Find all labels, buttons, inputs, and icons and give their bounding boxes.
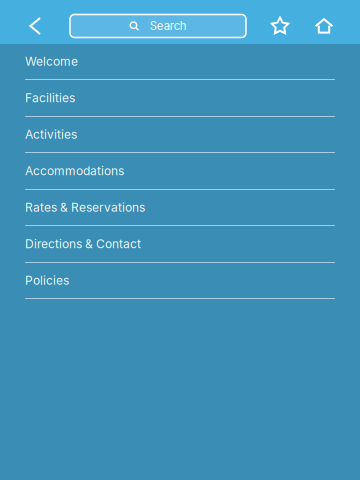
button[interactable]: Home <box>305 4 343 48</box>
button[interactable]: Facilities <box>0 80 360 117</box>
button[interactable]: Favorites <box>262 4 298 48</box>
staticText: Search <box>150 19 187 33</box>
button[interactable]: Rates & Reservations <box>0 190 360 226</box>
staticText: Directions & Contact <box>25 237 141 251</box>
button[interactable]: Directions & Contact <box>0 226 360 263</box>
button[interactable]: Back <box>20 4 50 48</box>
staticText: Policies <box>25 273 69 288</box>
staticText: Rates & Reservations <box>25 200 145 215</box>
staticText: Accommodations <box>25 164 124 178</box>
button[interactable]: Policies <box>0 263 360 299</box>
staticText: Activities <box>25 127 77 142</box>
button[interactable]: Search <box>70 4 246 48</box>
staticText: Facilities <box>25 91 75 105</box>
button[interactable]: Activities <box>0 117 360 153</box>
button[interactable]: Accommodations <box>0 153 360 190</box>
staticText: Welcome <box>25 54 78 69</box>
button[interactable]: Welcome <box>0 44 360 80</box>
